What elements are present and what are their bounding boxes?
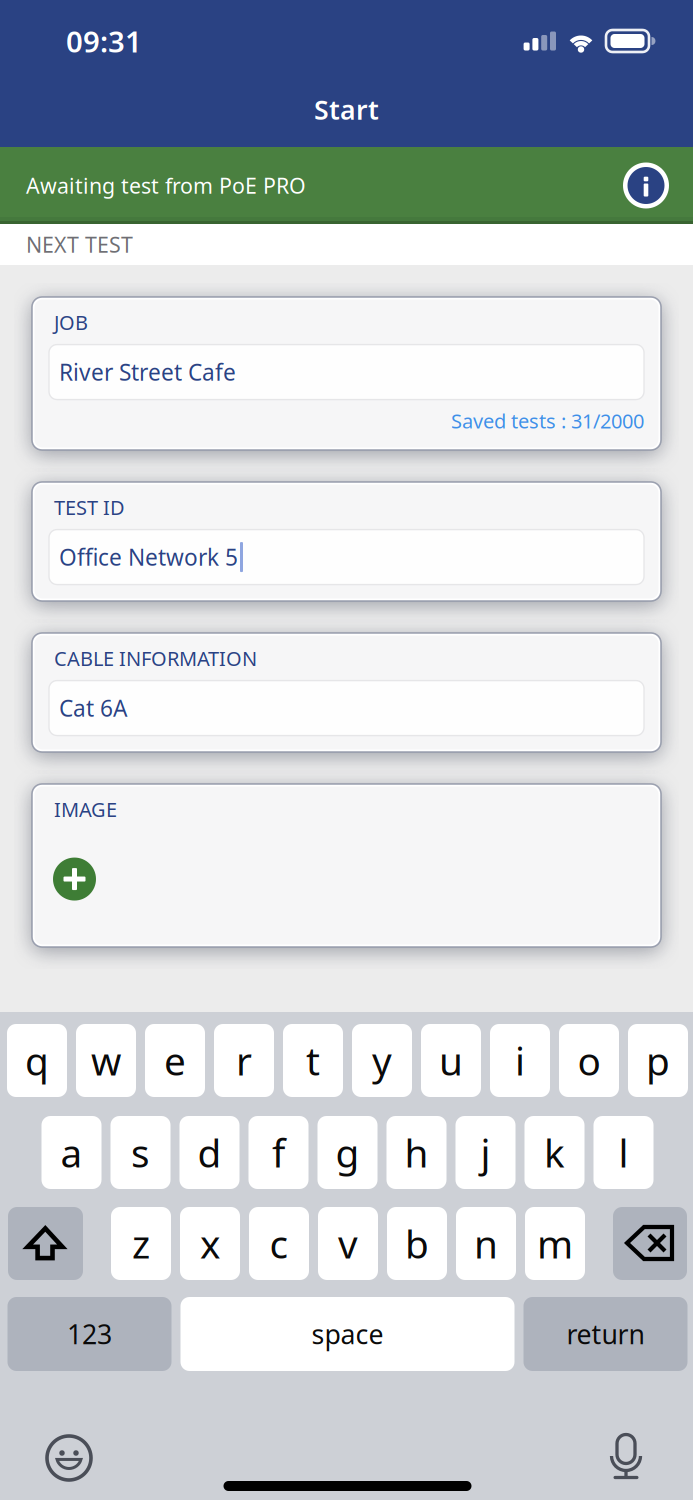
staticText: e [164,1035,186,1086]
button[interactable]: w [76,1024,136,1097]
button[interactable]: f [248,1116,308,1189]
staticText: NEXT TEST [26,230,133,259]
staticText: Start [314,92,379,127]
button[interactable]: o [559,1024,619,1097]
staticText: Office Network 5 [59,542,238,572]
button[interactable]: y [352,1024,412,1097]
button[interactable]: l [593,1116,653,1189]
staticText: x [200,1218,220,1269]
staticText: o [577,1035,600,1086]
button[interactable]: h [386,1116,446,1189]
button[interactable]: k [524,1116,584,1189]
staticText: Cat 6A [59,693,127,723]
staticText: CABLE INFORMATION [54,645,257,672]
button[interactable]: Shift [8,1207,83,1280]
staticText: g [335,1127,359,1178]
staticText: z [132,1218,150,1269]
staticText: n [474,1218,498,1269]
staticText: River Street Cafe [59,357,236,387]
staticText: w [91,1035,121,1086]
button[interactable]: n [456,1207,516,1280]
staticText: r [236,1035,252,1086]
staticText: u [439,1035,463,1086]
button[interactable]: v [318,1207,378,1280]
staticText: l [618,1127,628,1178]
staticText: TEST ID [54,494,125,521]
button[interactable]: c [249,1207,309,1280]
button[interactable]: g [317,1116,377,1189]
staticText: d [197,1127,221,1178]
staticText: f [272,1127,285,1178]
staticText: JOB [54,309,88,336]
staticText: c [269,1218,288,1269]
button[interactable]: u [421,1024,481,1097]
button[interactable]: r [214,1024,274,1097]
staticText: p [646,1035,670,1086]
staticText: h [404,1127,428,1178]
button[interactable]: Information [623,162,669,208]
button[interactable]: m [525,1207,585,1280]
staticText: q [25,1035,49,1086]
button[interactable]: Emoji [46,1435,92,1481]
staticText: v [338,1218,358,1269]
button[interactable]: i [490,1024,550,1097]
button[interactable]: d [179,1116,239,1189]
staticText: Saved tests : 31/2000 [451,408,644,434]
button[interactable]: return [523,1297,687,1371]
staticText: 123 [67,1316,112,1352]
staticText: y [372,1035,392,1086]
button[interactable]: p [628,1024,688,1097]
button[interactable]: t [283,1024,343,1097]
staticText: t [306,1035,320,1086]
staticText: k [544,1127,565,1178]
staticText: return [566,1316,644,1352]
staticText: b [405,1218,429,1269]
button[interactable]: Add image [53,858,96,901]
button[interactable]: z [111,1207,171,1280]
button[interactable]: s [110,1116,170,1189]
staticText: s [131,1127,150,1178]
button[interactable]: Dictation [603,1435,649,1481]
button[interactable]: space [180,1297,514,1371]
staticText: i [515,1035,525,1086]
staticText: Awaiting test from PoE PRO [26,171,306,200]
button[interactable]: j [455,1116,515,1189]
staticText: m [537,1218,573,1269]
button[interactable]: e [145,1024,205,1097]
staticText: IMAGE [54,796,117,823]
button[interactable]: q [7,1024,67,1097]
button[interactable]: b [387,1207,447,1280]
button[interactable]: Delete [613,1207,687,1280]
staticText: space [311,1316,383,1352]
staticText: j [480,1127,490,1178]
staticText: 09:31 [66,21,142,60]
button[interactable]: x [180,1207,240,1280]
button[interactable]: a [41,1116,101,1189]
button[interactable]: 123 [7,1297,171,1371]
staticText: a [60,1127,82,1178]
